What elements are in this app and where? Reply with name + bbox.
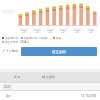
staticText: 2021 — [60, 28, 66, 31]
staticText: 積立金額 — [52, 50, 66, 54]
staticText: 年月 — [14, 75, 21, 79]
staticText: 3月 — [48, 31, 52, 34]
staticText: 2020 — [47, 28, 53, 31]
staticText: 2023 — [4, 85, 11, 89]
staticText: 積立予定額・NISA分 — [5, 40, 30, 44]
staticText: 9月 — [89, 31, 93, 34]
staticText: 2018 — [21, 28, 27, 31]
staticText: 掛金累計額 — [5, 36, 18, 39]
staticText: 資産 — [56, 36, 62, 39]
staticText: 3月 — [22, 31, 26, 34]
staticText: 2023 — [88, 28, 94, 31]
staticText: グラフ種別 — [2, 49, 19, 53]
staticText: 9月 — [61, 31, 65, 34]
staticText: 14,150,000 — [81, 94, 97, 98]
staticText: 2019 — [34, 28, 40, 31]
staticText: 掛金累計額（円換算） — [24, 36, 50, 39]
staticText: 9月 — [35, 31, 39, 34]
button[interactable]: 4月 — [0, 91, 100, 100]
staticText: 積立金額 — [42, 75, 55, 79]
staticText: 2022 — [74, 28, 80, 31]
staticText: 4月 — [6, 94, 12, 98]
staticText: 3月 — [75, 31, 79, 34]
button[interactable]: 積立金額 — [21, 47, 97, 56]
button[interactable]: 2023 — [0, 83, 100, 90]
